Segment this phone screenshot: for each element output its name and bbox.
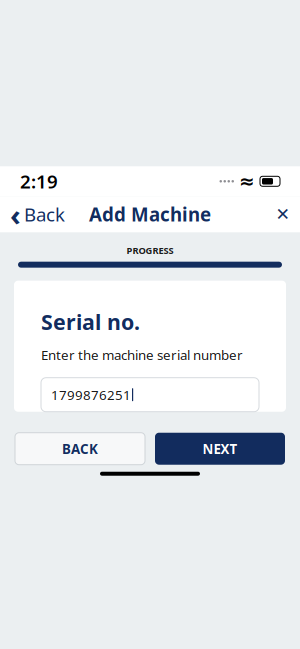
button[interactable]: 1799876251 [41, 378, 259, 412]
button[interactable]: Close [266, 196, 300, 232]
staticText: Enter the machine serial number [41, 346, 243, 364]
staticText: Back [24, 202, 65, 227]
staticText: BACK [62, 440, 98, 458]
staticText: ‹ [10, 195, 21, 234]
button[interactable]: BACK [15, 433, 145, 465]
button[interactable]: NEXT [155, 433, 285, 465]
staticText: ≈ [239, 171, 255, 192]
button[interactable]: ‹ [0, 196, 75, 232]
staticText: ✕ [275, 204, 290, 224]
staticText: 1799876251 [51, 386, 131, 404]
staticText: 2:19 [20, 169, 58, 194]
staticText: PROGRESS [126, 244, 173, 257]
staticText: NEXT [202, 440, 237, 458]
staticText: Add Machine [89, 202, 211, 227]
staticText: Serial no. [41, 308, 140, 336]
